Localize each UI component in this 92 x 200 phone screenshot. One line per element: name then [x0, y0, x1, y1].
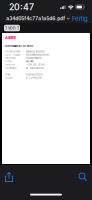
- staticText: Data: [5, 73, 10, 76]
- staticText: N. 884120/A: [26, 66, 44, 70]
- staticText: Nome cliente: [5, 50, 20, 53]
- staticText: Città: [5, 60, 11, 63]
- staticText: Cod. fiscale: [5, 53, 20, 56]
- staticText: Telefono: [5, 63, 15, 66]
- staticText: RSSMRA80A01H: [26, 53, 49, 56]
- staticText: MARIO ROSSI: [26, 50, 45, 53]
- button[interactable]: Fertig: [72, 14, 88, 23]
- button[interactable]: Share: [1, 169, 17, 185]
- staticText: € 1.240,00: [26, 76, 42, 79]
- staticText: Aadve: [5, 35, 16, 40]
- staticText: 20:47: [9, 2, 34, 12]
- staticText: a34d05f4c77a1a5d6.pdf: [6, 16, 65, 21]
- staticText: Totale: [5, 76, 12, 79]
- staticText: 1 von 1: [5, 25, 19, 31]
- staticText: Milano: [26, 60, 34, 63]
- staticText: Via Roma 12: [26, 57, 42, 60]
- staticText: Fertig: [72, 15, 88, 22]
- button[interactable]: Search: [75, 169, 91, 185]
- staticText: Contratto: [5, 66, 17, 70]
- staticText: Indirizzo: [5, 57, 16, 60]
- staticText: 01/08/2025: [26, 73, 43, 76]
- staticText: +39 02 1234: [26, 63, 45, 66]
- staticText: Informazioni di cont: [5, 45, 33, 48]
